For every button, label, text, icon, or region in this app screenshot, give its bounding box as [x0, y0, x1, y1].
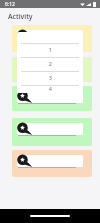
button[interactable]: 4 — [17, 86, 83, 93]
other: Favourite — [17, 154, 33, 170]
other: Favourite — [17, 61, 33, 77]
staticText: Activity — [8, 12, 33, 22]
button[interactable]: Favourite — [12, 86, 92, 111]
button[interactable]: Favourite — [12, 150, 92, 177]
button[interactable]: 3 — [17, 72, 83, 85]
staticText: 4 — [49, 86, 52, 93]
button[interactable]: Favourite — [12, 25, 92, 52]
staticText: 6:12 — [5, 1, 15, 8]
button[interactable]: 2 — [17, 58, 83, 71]
other: Favourite — [17, 29, 33, 45]
button[interactable]: 1 — [17, 44, 83, 57]
other: Favourite — [17, 122, 33, 138]
button[interactable]: Favourite — [12, 118, 92, 146]
staticText: 2 — [49, 61, 52, 68]
button[interactable]: Favourite — [12, 57, 92, 82]
staticText: 1 — [49, 47, 52, 54]
other: Favourite — [17, 90, 33, 106]
staticText: 3 — [49, 75, 52, 82]
